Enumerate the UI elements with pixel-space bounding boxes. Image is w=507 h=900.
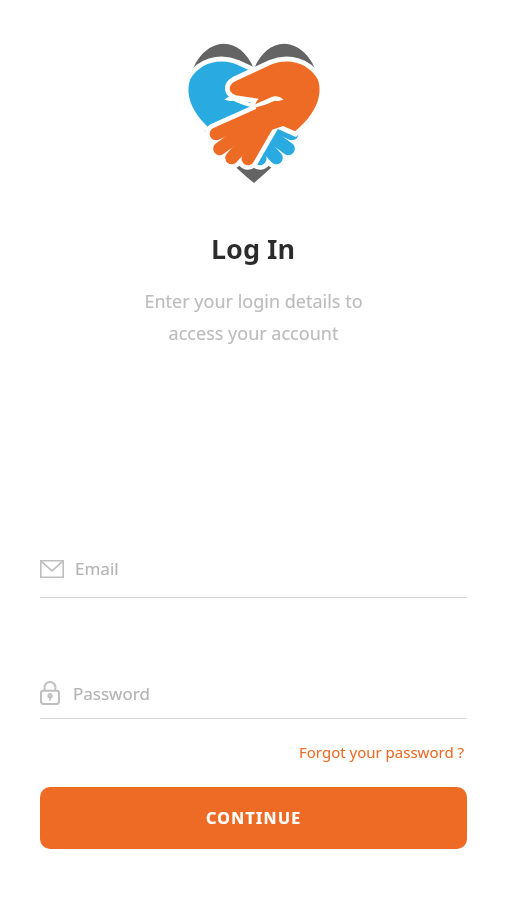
staticText: CONTINUE	[206, 807, 302, 829]
button[interactable]: Forgot your password ?	[297, 737, 467, 767]
staticText: Enter your login details to access your …	[144, 289, 363, 345]
staticText: Password	[73, 682, 150, 705]
staticText: Email	[75, 557, 119, 580]
button[interactable]: Email	[40, 557, 467, 598]
staticText: Log In	[211, 230, 296, 267]
staticText: Forgot your password ?	[299, 742, 465, 762]
button[interactable]: Password	[40, 681, 467, 719]
button[interactable]: CONTINUE	[40, 787, 467, 849]
